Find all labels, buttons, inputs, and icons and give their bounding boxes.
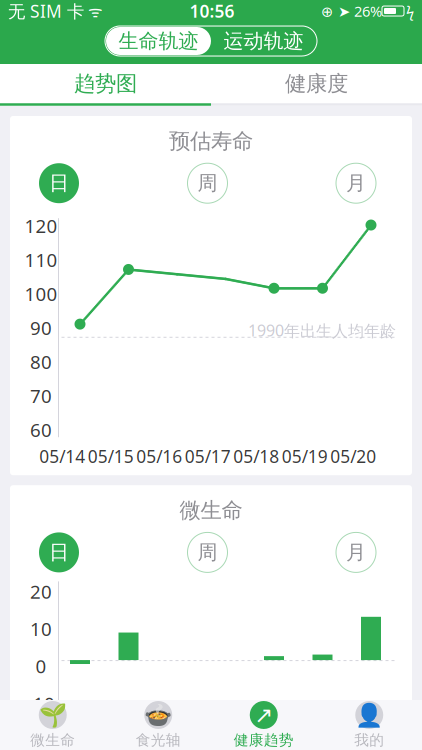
staticText: 健康度 bbox=[285, 71, 348, 97]
button[interactable]: 运动轨迹 bbox=[211, 27, 316, 55]
staticText: 周 bbox=[197, 171, 217, 195]
button[interactable]: 月 bbox=[336, 163, 376, 203]
staticText: 05/17 bbox=[185, 445, 231, 468]
button[interactable]: 🍲 bbox=[105, 700, 211, 750]
staticText: 食光轴 bbox=[136, 731, 181, 749]
button[interactable]: 生命轨迹 bbox=[106, 27, 211, 55]
staticText: 05/19 bbox=[282, 445, 328, 468]
button[interactable]: 日 bbox=[39, 532, 79, 572]
button[interactable]: 月 bbox=[336, 532, 376, 572]
staticText: 0 bbox=[35, 654, 46, 678]
staticText: 80 bbox=[30, 349, 52, 374]
staticText: 微生命 bbox=[30, 731, 75, 749]
staticText: 70 bbox=[30, 383, 52, 408]
staticText: 100 bbox=[24, 281, 57, 306]
staticText: 🍲 bbox=[144, 702, 172, 728]
staticText: 运动轨迹 bbox=[223, 29, 303, 53]
staticText: 健康趋势 bbox=[234, 731, 294, 749]
staticText: ⊕ ➤ 26% bbox=[321, 1, 382, 21]
button[interactable]: 周 bbox=[187, 163, 227, 203]
staticText: 110 bbox=[24, 247, 57, 272]
button[interactable]: 趋势图 bbox=[0, 64, 211, 103]
staticText: 日 bbox=[49, 171, 69, 195]
staticText: 05/14 bbox=[39, 445, 85, 468]
staticText: 周 bbox=[197, 540, 217, 565]
staticText: 月 bbox=[346, 540, 366, 565]
staticText: 90 bbox=[30, 315, 52, 340]
staticText: 05/16 bbox=[136, 445, 182, 468]
staticText: ᯤ bbox=[84, 0, 103, 22]
staticText: 月 bbox=[346, 171, 366, 195]
staticText: 10 bbox=[30, 616, 52, 641]
staticText: 05/15 bbox=[88, 445, 134, 468]
staticText: 我的 bbox=[354, 731, 384, 749]
staticText: 05/20 bbox=[330, 445, 376, 468]
staticText: 1990年出生人均年龄 bbox=[248, 320, 396, 341]
staticText: 生命轨迹 bbox=[118, 29, 198, 53]
staticText: 05/18 bbox=[233, 445, 279, 468]
staticText: 趋势图 bbox=[74, 71, 137, 97]
staticText: 60 bbox=[30, 417, 52, 442]
staticText: 10:56 bbox=[189, 0, 234, 22]
staticText: 日 bbox=[49, 540, 69, 565]
button[interactable]: 周 bbox=[187, 532, 227, 572]
button[interactable]: 👤 bbox=[316, 700, 422, 750]
staticText: -10 bbox=[27, 691, 55, 716]
button[interactable]: 🌱 bbox=[0, 700, 105, 750]
staticText: 微生命 bbox=[179, 497, 242, 523]
staticText: 🌱 bbox=[39, 702, 67, 728]
staticText: 预估寿命 bbox=[169, 128, 253, 154]
staticText: ↗ bbox=[254, 702, 273, 728]
button[interactable]: 健康度 bbox=[211, 64, 422, 103]
button[interactable]: 日 bbox=[39, 163, 79, 203]
staticText: 👤 bbox=[355, 702, 383, 728]
staticText: 无 SIM 卡 bbox=[8, 0, 84, 22]
staticText: 20 bbox=[30, 579, 52, 604]
staticText: ϟ bbox=[406, 1, 414, 21]
staticText: 120 bbox=[24, 213, 57, 238]
button[interactable]: ↗ bbox=[211, 700, 316, 750]
